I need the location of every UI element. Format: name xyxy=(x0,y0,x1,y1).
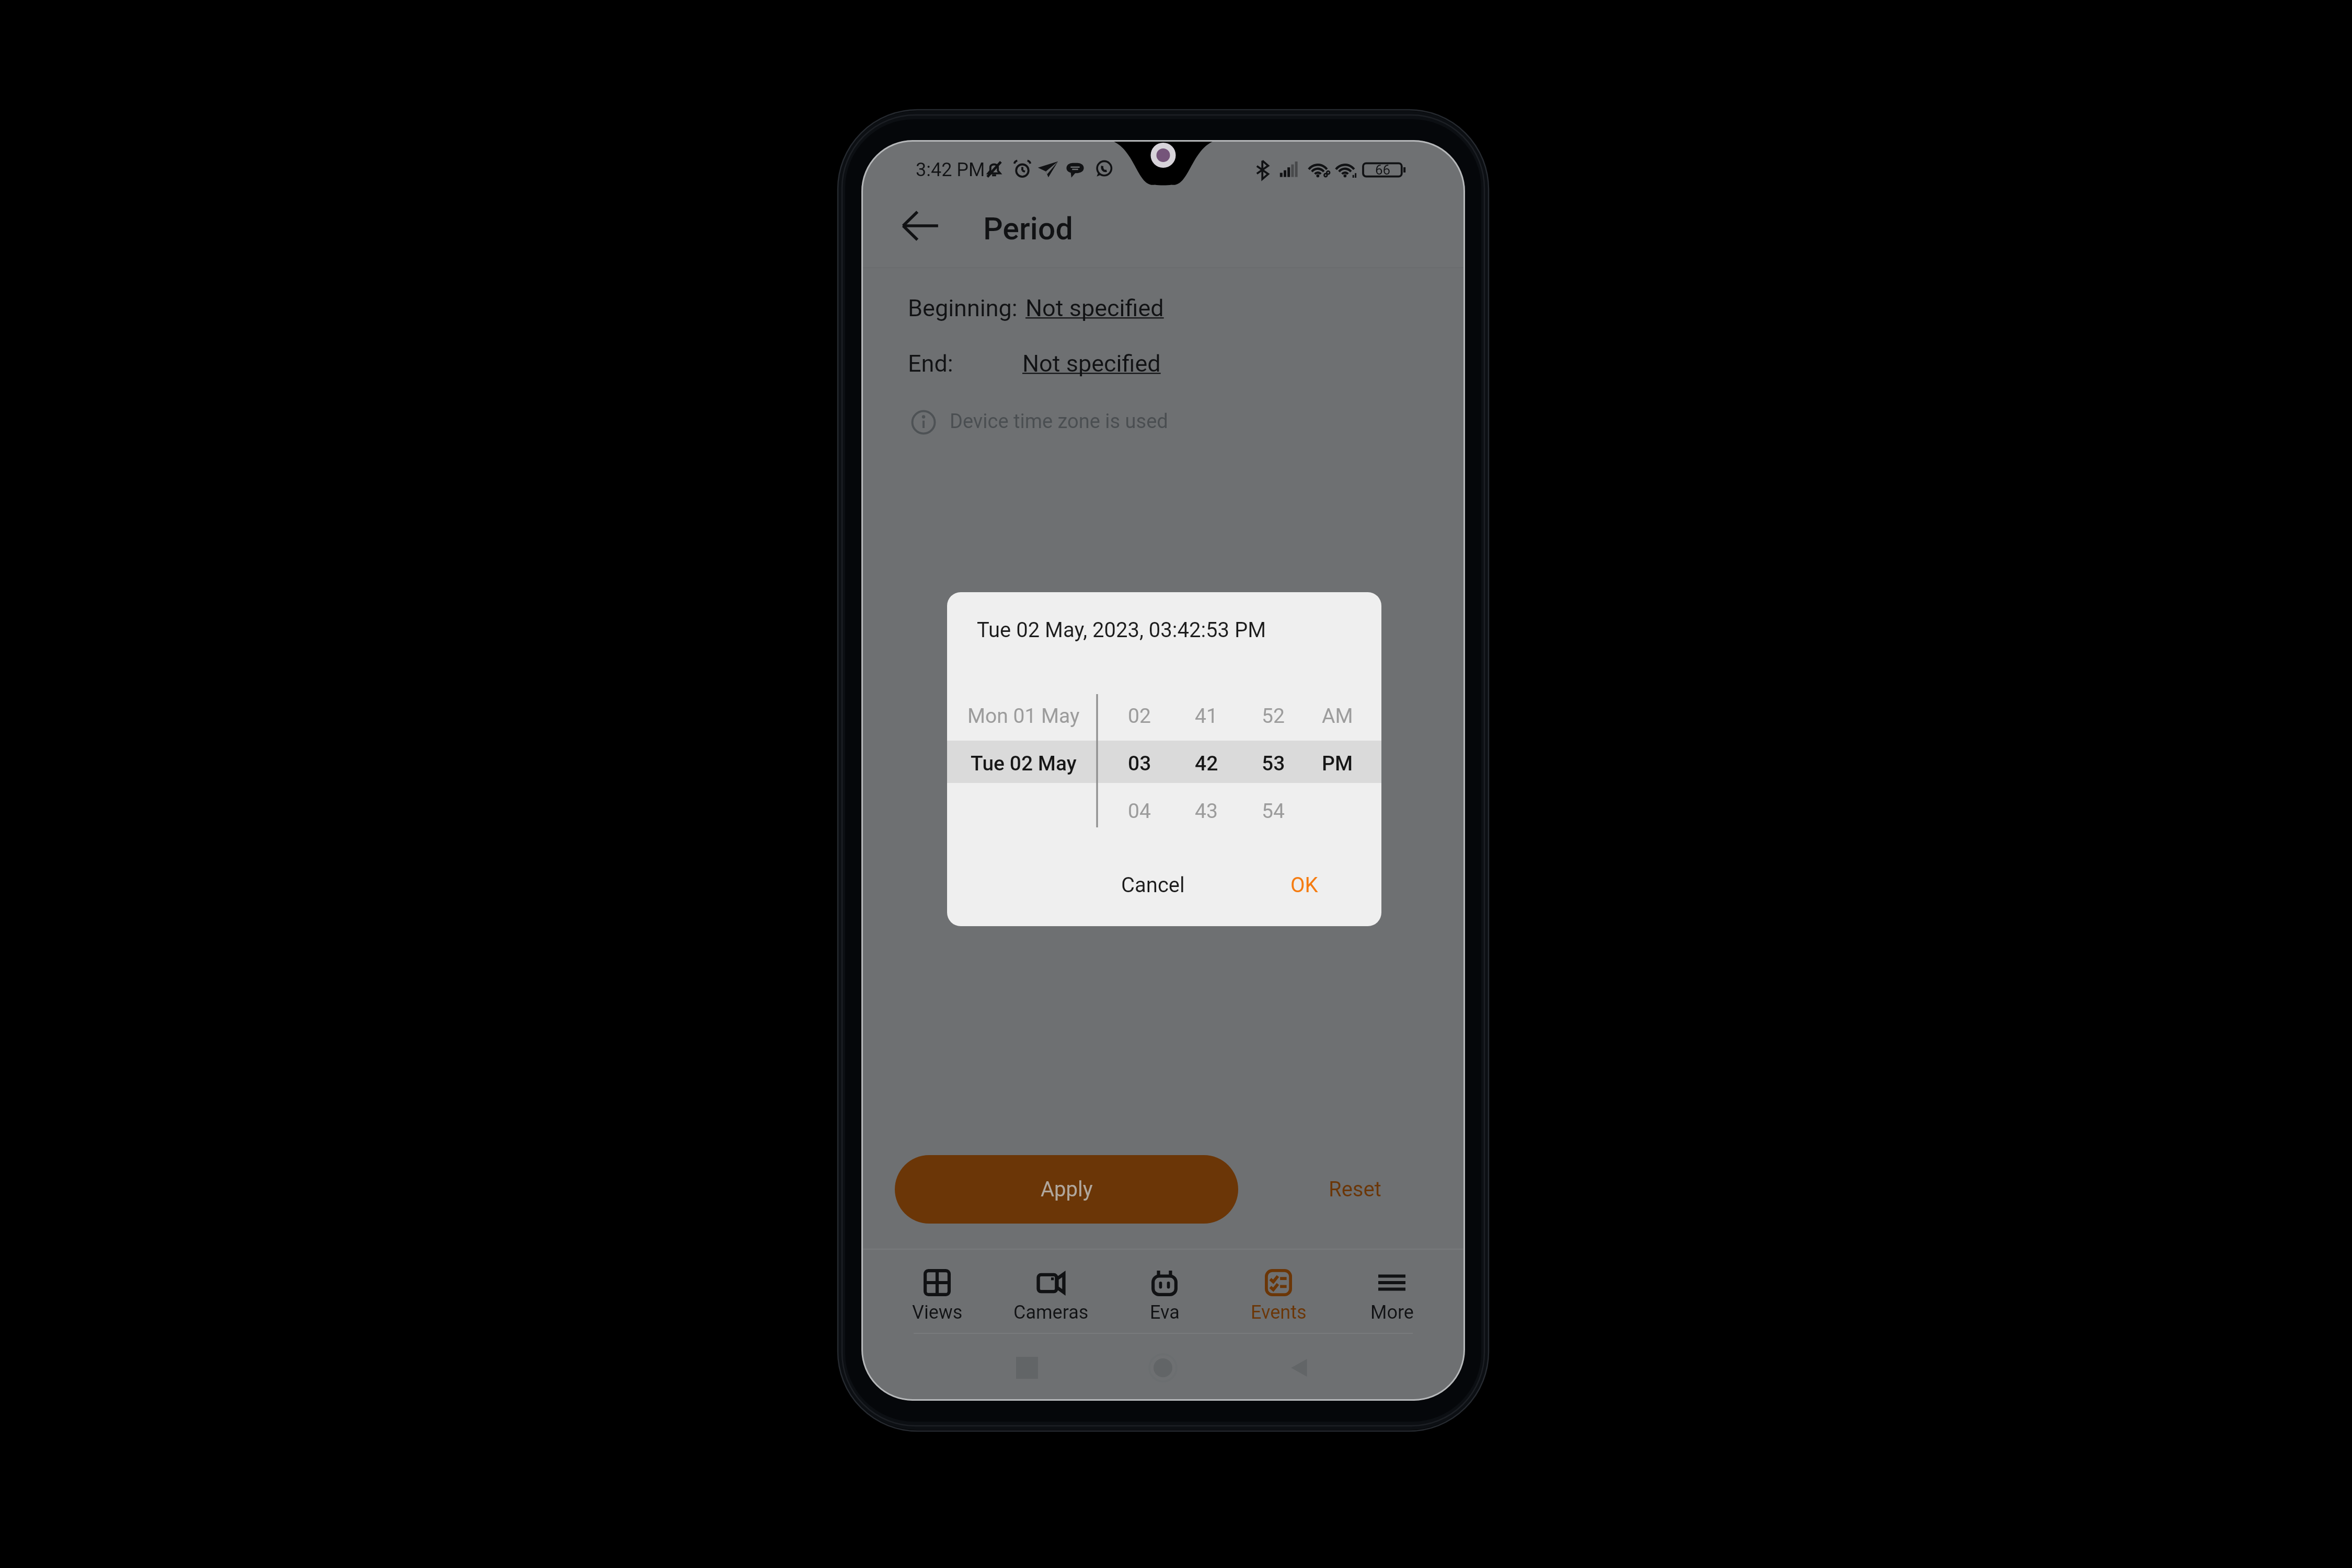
staticText: 03 xyxy=(1128,752,1151,776)
staticText: Beginning: xyxy=(908,294,1018,322)
button[interactable]: 42 xyxy=(1149,742,1264,785)
button[interactable]: Back xyxy=(894,200,947,252)
button[interactable]: 54 xyxy=(1216,790,1331,832)
button[interactable]: Apply xyxy=(895,1155,1238,1224)
button[interactable]: Events xyxy=(1224,1254,1333,1328)
staticText: Not specified xyxy=(1025,294,1164,322)
button[interactable]: Home xyxy=(1132,1336,1194,1399)
button[interactable]: End: xyxy=(887,341,1161,385)
staticText: AM xyxy=(1322,704,1353,728)
staticText: Apply xyxy=(1041,1177,1093,1202)
button[interactable]: Cancel xyxy=(1096,856,1210,914)
button[interactable] xyxy=(1280,790,1381,832)
staticText: 43 xyxy=(1195,799,1218,823)
staticText: Mon 01 May xyxy=(967,704,1080,728)
staticText: End: xyxy=(908,350,953,377)
staticText: 04 xyxy=(1128,799,1151,823)
button[interactable]: 52 xyxy=(1216,695,1331,737)
staticText: Tue 02 May xyxy=(971,752,1077,776)
staticText: PM xyxy=(1322,752,1353,776)
staticText: Tue 02 May, 2023, 03:42:53 PM xyxy=(977,618,1266,642)
staticText: Eva xyxy=(1150,1301,1180,1323)
button[interactable]: 41 xyxy=(1149,695,1264,737)
staticText: 52 xyxy=(1262,704,1285,728)
button[interactable]: 02 xyxy=(1082,695,1197,737)
staticText: 53 xyxy=(1262,752,1285,776)
staticText: 42 xyxy=(1195,752,1218,776)
button[interactable]: 04 xyxy=(1082,790,1197,832)
staticText: Views xyxy=(912,1301,963,1323)
button[interactable]: PM xyxy=(1280,742,1381,785)
button[interactable]: Views xyxy=(882,1254,992,1328)
button[interactable]: AM xyxy=(1280,695,1381,737)
button[interactable]: Reset xyxy=(1297,1155,1412,1224)
staticText: Period xyxy=(983,211,1073,247)
staticText: More xyxy=(1370,1301,1414,1323)
button[interactable]: Tue 02 May xyxy=(966,742,1081,785)
staticText: Events xyxy=(1251,1301,1307,1323)
staticText: OK xyxy=(1290,873,1318,897)
staticText: 3:42 PM xyxy=(916,159,985,181)
button[interactable]: 43 xyxy=(1149,790,1264,832)
button[interactable]: Eva xyxy=(1110,1254,1219,1328)
button[interactable]: Mon 01 May xyxy=(966,695,1081,737)
button[interactable]: Recents xyxy=(996,1336,1058,1399)
button[interactable]: Cameras xyxy=(996,1254,1106,1328)
button[interactable]: OK xyxy=(1257,856,1351,914)
button[interactable]: Beginning: xyxy=(887,286,1164,330)
staticText: Device time zone is used xyxy=(950,410,1168,433)
button[interactable]: 53 xyxy=(1216,742,1331,785)
staticText: 54 xyxy=(1262,799,1285,823)
staticText: Reset xyxy=(1329,1177,1381,1202)
button[interactable]: More xyxy=(1337,1254,1447,1328)
button[interactable]: 03 xyxy=(1082,742,1197,785)
staticText: Cancel xyxy=(1121,873,1185,897)
staticText: Cameras xyxy=(1013,1301,1089,1323)
staticText: 41 xyxy=(1195,704,1218,728)
staticText: 66 xyxy=(1375,162,1391,178)
staticText: 02 xyxy=(1128,704,1151,728)
staticText: Not specified xyxy=(1022,350,1161,377)
